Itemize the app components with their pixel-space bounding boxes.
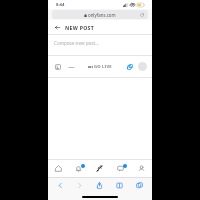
button[interactable]: Profile (131, 160, 152, 177)
button[interactable]: Back (53, 23, 62, 32)
button[interactable]: Add media (53, 62, 63, 72)
button[interactable]: Compose new post... (48, 35, 152, 55)
staticText: onlyfans.com (88, 12, 116, 18)
button[interactable]: Notifications (68, 160, 89, 177)
button[interactable]: Post (138, 62, 147, 71)
button[interactable]: Share (89, 178, 109, 192)
button[interactable]: Tabs (129, 178, 149, 192)
button[interactable]: Forward (70, 178, 89, 192)
button[interactable]: Messages (110, 160, 131, 177)
button[interactable]: More (67, 63, 75, 71)
staticText: 8:44 (56, 2, 65, 8)
button[interactable]: Schedule post (125, 62, 135, 72)
button[interactable]: Reload (139, 12, 145, 18)
button[interactable]: Home (48, 160, 68, 177)
button[interactable]: onlyfans.com (52, 10, 148, 19)
staticText: Compose new post... (54, 40, 99, 46)
button[interactable]: Back (51, 178, 70, 192)
button[interactable]: Bookmarks (109, 178, 129, 192)
staticText: NEW POST (65, 24, 95, 31)
button[interactable]: New post (89, 160, 110, 177)
button[interactable]: GO LIVE (88, 64, 112, 70)
staticText: GO LIVE (94, 64, 112, 70)
